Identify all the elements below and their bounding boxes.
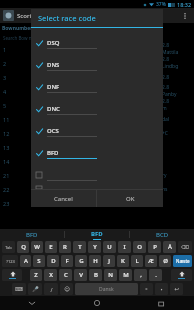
button[interactable]: Æ — [145, 255, 157, 267]
button[interactable]: H — [89, 255, 101, 267]
button[interactable]: OK — [97, 190, 163, 207]
button[interactable]: Checked — [31, 120, 163, 142]
button[interactable]: Dansk — [75, 283, 138, 295]
button[interactable]: A — [20, 255, 31, 267]
button[interactable]: 13 — [0, 140, 194, 154]
button[interactable]: Keyboard settings — [12, 283, 26, 295]
button[interactable]: U — [103, 241, 116, 253]
button[interactable]: . — [149, 269, 162, 281]
staticText: T — [78, 243, 82, 251]
other: Checked — [35, 83, 43, 91]
button[interactable]: 11 — [0, 112, 194, 126]
button[interactable]: 21 — [0, 168, 194, 182]
button[interactable]: Tab — [2, 241, 15, 253]
button[interactable]: Checked — [31, 54, 163, 76]
button[interactable]: Hide keyboard — [170, 283, 183, 295]
button[interactable]: Back — [0, 296, 64, 310]
button[interactable]: / — [44, 283, 58, 295]
button[interactable]: Checked — [31, 32, 163, 54]
staticText: Æ — [148, 257, 154, 265]
button[interactable]: Checked — [31, 142, 163, 164]
button[interactable]: 1 — [0, 42, 194, 56]
button[interactable]: R — [59, 241, 71, 253]
button[interactable]: V — [74, 269, 87, 281]
staticText: K — [121, 257, 125, 265]
button[interactable]: More options — [179, 10, 191, 22]
button[interactable]: E — [45, 241, 57, 253]
staticText: V — [79, 271, 83, 279]
button[interactable]: W — [31, 241, 43, 253]
button[interactable]: BFD — [65, 229, 129, 240]
button[interactable]: Å — [163, 241, 176, 253]
button[interactable]: O — [133, 241, 146, 253]
button[interactable]: ° — [140, 283, 153, 295]
button[interactable]: BFD — [0, 229, 64, 240]
staticText: 2.8 — [162, 42, 170, 49]
button[interactable]: Z — [30, 269, 42, 281]
button[interactable]: L — [131, 255, 143, 267]
button[interactable]: App icon — [3, 10, 14, 21]
staticText: Lindbg — [162, 63, 179, 70]
staticText: m — [162, 105, 167, 112]
button[interactable]: Shift — [171, 269, 192, 281]
button[interactable]: 2 — [0, 56, 194, 70]
button[interactable]: B — [89, 269, 102, 281]
button[interactable]: Næste — [173, 255, 192, 267]
staticText: 12 — [3, 130, 10, 137]
button[interactable]: G — [75, 255, 87, 267]
button[interactable]: 23 — [0, 196, 194, 210]
button[interactable]: Emoji — [60, 283, 73, 295]
button[interactable]: Shift — [2, 269, 22, 281]
button[interactable]: T — [73, 241, 86, 253]
button[interactable]: 22 — [0, 182, 194, 196]
staticText: 2 — [3, 60, 7, 67]
button[interactable]: P — [148, 241, 161, 253]
button[interactable]: Backspace — [178, 241, 192, 253]
staticText: Z — [34, 271, 38, 279]
staticText: R — [63, 243, 67, 251]
staticText: 3 — [3, 74, 7, 81]
staticText: +C — [162, 130, 169, 137]
button[interactable]: Q — [17, 241, 29, 253]
button[interactable]: 5 — [0, 98, 194, 112]
button[interactable]: 14 — [0, 154, 194, 168]
button[interactable]: 3 — [0, 70, 194, 84]
button[interactable]: Y — [88, 241, 101, 253]
button[interactable]: F — [61, 255, 73, 267]
button[interactable]: I — [118, 241, 131, 253]
other: Checked — [35, 149, 43, 157]
button[interactable]: • — [155, 283, 168, 295]
staticText: Panby — [162, 91, 177, 98]
button[interactable]: Cancel — [31, 190, 96, 207]
button[interactable]: J — [103, 255, 115, 267]
button[interactable]: N — [104, 269, 117, 281]
button[interactable]: C — [59, 269, 72, 281]
staticText: 2.8 — [162, 74, 170, 81]
button[interactable]: , — [134, 269, 147, 281]
staticText: 14 — [3, 158, 10, 165]
button[interactable]: BCD — [130, 229, 194, 240]
button[interactable]: D — [47, 255, 59, 267]
button[interactable]: M — [119, 269, 132, 281]
button[interactable]: Home — [64, 296, 129, 310]
staticText: Search Bow nr — [3, 35, 34, 41]
button[interactable]: Checked — [31, 76, 163, 98]
button[interactable]: ?123 — [2, 255, 18, 267]
button[interactable]: X — [44, 269, 57, 281]
button[interactable]: 12 — [0, 126, 194, 140]
button[interactable]: Unchecked — [31, 164, 163, 186]
button[interactable]: Ø — [159, 255, 171, 267]
button[interactable]: K — [117, 255, 129, 267]
staticText: O — [137, 243, 142, 251]
staticText: Mattila — [162, 49, 179, 56]
staticText: 2.8 — [162, 56, 170, 63]
button[interactable]: Unchecked — [31, 186, 163, 189]
staticText: ° — [145, 286, 148, 293]
button[interactable]: 4 — [0, 84, 194, 98]
other: Unchecked — [35, 186, 43, 189]
button[interactable]: Recents — [129, 296, 194, 310]
staticText: 4 — [3, 88, 7, 95]
button[interactable]: Voice input — [28, 283, 42, 295]
button[interactable]: S — [33, 255, 45, 267]
button[interactable]: Checked — [31, 98, 163, 120]
